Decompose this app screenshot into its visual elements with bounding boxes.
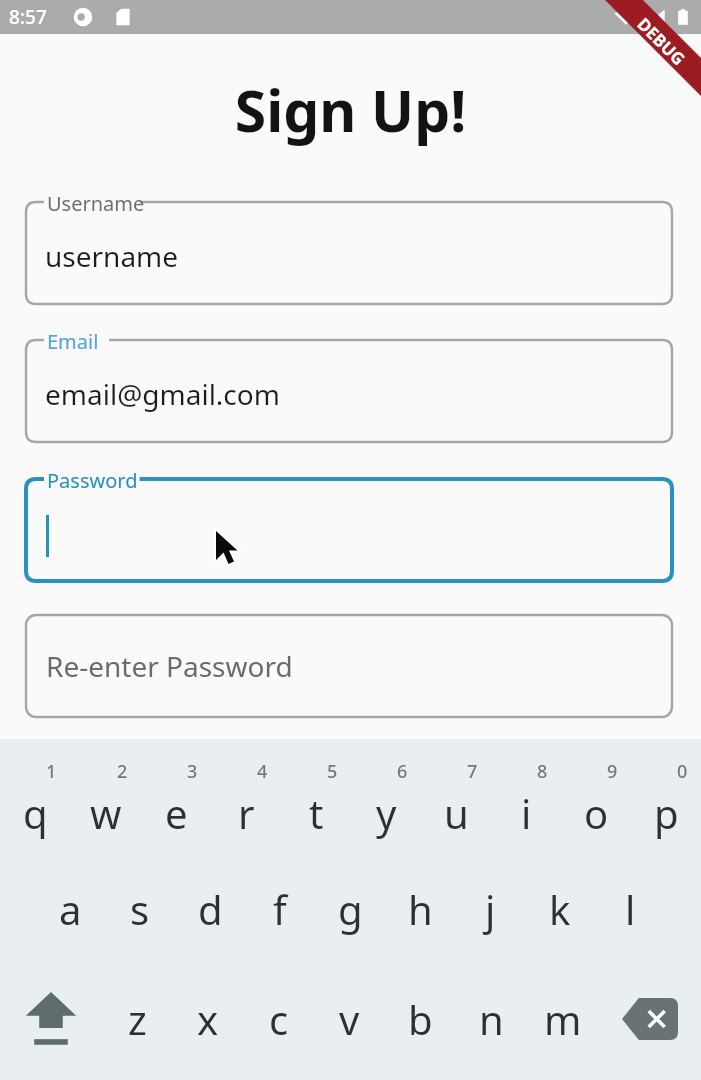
button[interactable]: 8 [491, 745, 561, 853]
button[interactable]: l [595, 856, 665, 962]
staticText: k [549, 882, 571, 936]
staticText: j [485, 882, 496, 936]
staticText: l [625, 882, 636, 936]
staticText: 6 [397, 759, 408, 784]
button[interactable]: 7 [421, 745, 491, 853]
button[interactable]: d [175, 856, 245, 962]
button[interactable]: n [456, 966, 527, 1072]
button[interactable]: 3 [141, 745, 211, 853]
button[interactable]: z [102, 966, 172, 1072]
button[interactable]: a [36, 856, 105, 962]
staticText: z [128, 992, 147, 1046]
staticText: 1 [46, 759, 57, 784]
staticText: Re-enter Password [46, 647, 293, 685]
staticText: 3 [187, 759, 198, 784]
staticText: v [339, 992, 360, 1046]
staticText: a [59, 882, 82, 936]
button[interactable]: 5 [281, 745, 351, 853]
button[interactable]: x [172, 966, 243, 1072]
staticText: 7 [467, 759, 478, 784]
staticText: b [408, 992, 433, 1046]
staticText: 4 [257, 759, 268, 784]
button[interactable]: k [525, 856, 595, 962]
staticText: q [23, 786, 48, 840]
staticText: 5 [327, 759, 338, 784]
staticText: 8:57 [9, 4, 47, 30]
staticText: username [45, 237, 179, 275]
button[interactable]: s [105, 856, 175, 962]
staticText: o [584, 786, 609, 840]
button[interactable]: h [385, 856, 455, 962]
staticText: 9 [607, 759, 618, 784]
button[interactable]: c [243, 966, 314, 1072]
button[interactable]: b [385, 966, 456, 1072]
button[interactable]: Re-enter Password [26, 615, 672, 717]
button[interactable]: m [527, 966, 598, 1072]
button[interactable]: 0 [631, 745, 701, 853]
staticText: p [654, 786, 679, 840]
staticText: 0 [677, 759, 688, 784]
staticText: e [165, 786, 188, 840]
button[interactable]: Email [26, 324, 672, 442]
button[interactable]: Username [26, 186, 672, 304]
staticText: 8 [537, 759, 548, 784]
staticText: i [521, 786, 532, 840]
staticText: Email [47, 328, 99, 355]
staticText: n [479, 992, 504, 1046]
staticText: h [408, 882, 433, 936]
button[interactable]: 9 [561, 745, 631, 853]
button[interactable]: Shift [0, 966, 102, 1072]
staticText: Sign Up! [0, 71, 701, 149]
button[interactable]: v [314, 966, 385, 1072]
button[interactable]: 1 [0, 745, 71, 853]
staticText: g [338, 882, 363, 936]
staticText: w [90, 786, 122, 840]
staticText: d [198, 882, 223, 936]
button[interactable]: 6 [351, 745, 421, 853]
staticText: t [309, 786, 324, 840]
staticText: u [444, 786, 469, 840]
button[interactable]: g [315, 856, 385, 962]
staticText: m [544, 992, 582, 1046]
staticText: c [269, 992, 289, 1046]
staticText: 2 [117, 759, 128, 784]
staticText: DEBUG [632, 12, 690, 70]
button[interactable]: 4 [211, 745, 281, 853]
staticText: r [238, 786, 255, 840]
staticText: y [376, 786, 397, 840]
button[interactable]: j [455, 856, 525, 962]
staticText: Password [47, 467, 138, 494]
button[interactable]: f [245, 856, 315, 962]
button[interactable]: Backspace [598, 966, 701, 1072]
button[interactable]: 2 [71, 745, 141, 853]
staticText: s [130, 882, 150, 936]
button[interactable]: Password [26, 463, 672, 581]
staticText: email@gmail.com [45, 375, 280, 413]
staticText: f [273, 882, 287, 936]
staticText: Username [47, 190, 145, 217]
staticText: x [197, 992, 219, 1046]
